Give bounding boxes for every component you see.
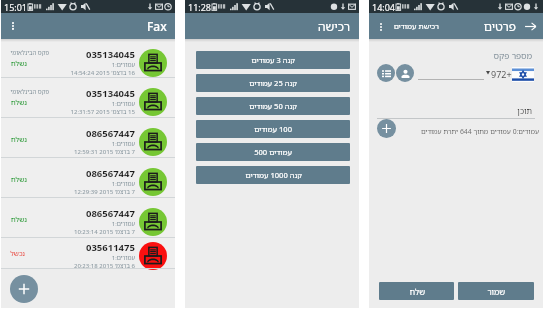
staticText: 086567447 (86, 167, 135, 180)
staticText: נכשל (10, 249, 25, 259)
staticText: 7 בדצמ' 2015 10:23:14 (73, 228, 135, 236)
button[interactable] (418, 66, 484, 80)
staticText: רכישת עמודים (393, 21, 439, 31)
staticText: עמודים:1 (111, 100, 135, 108)
staticText: פקס הבינלאומי (10, 88, 49, 96)
staticText: נשלח (10, 215, 27, 225)
button[interactable]: נכשל (1, 238, 175, 269)
button[interactable]: קנה 3 עמודים (196, 51, 350, 69)
staticText: 15:01 (4, 1, 28, 13)
staticText: נשלח (10, 135, 27, 145)
button[interactable]: קנה 25 עמודים (196, 74, 350, 92)
staticText: 035611475 (86, 241, 135, 254)
button[interactable]: Contacts (396, 64, 414, 82)
staticText: 16 בדצמ' 2015 14:54:24 (70, 69, 135, 77)
staticText: קנה 50 עמודים (249, 101, 297, 111)
staticText: תוכן (517, 105, 532, 116)
button[interactable]: נשלח (1, 198, 175, 238)
staticText: עמודים:0 עמודים מתוך 644 יתרת עמודים (420, 127, 539, 136)
button[interactable]: נשלח (1, 118, 175, 158)
button[interactable]: עמודים 500 (196, 143, 350, 161)
staticText: 6 בדצמ' 2015 20:23:18 (73, 262, 135, 270)
button[interactable]: New fax (10, 275, 38, 303)
button[interactable]: שמור (458, 282, 534, 300)
staticText: נשלח (10, 175, 27, 185)
staticText: 7 בדצמ' 2015 12:29:39 (73, 188, 135, 196)
button[interactable]: 100 עמודים (196, 120, 350, 138)
staticText: פרטים (483, 18, 516, 34)
staticText: קנה 1000 עמודים (245, 170, 302, 180)
staticText: פקס הבינלאומי (10, 49, 49, 57)
staticText: 035134045 (86, 87, 135, 100)
staticText: עמודים:1 (111, 180, 135, 188)
staticText: 086567447 (86, 127, 135, 140)
staticText: 14:04 (372, 1, 396, 13)
staticText: 15 בדצמ' 2015 12:31:57 (70, 108, 135, 116)
staticText: 035134045 (86, 48, 135, 61)
staticText: 100 עמודים (254, 124, 292, 134)
button[interactable]: Add content (377, 119, 396, 138)
button[interactable]: פקס הבינלאומי (1, 39, 175, 78)
button[interactable]: Back (523, 19, 537, 33)
staticText: Fax (147, 18, 167, 34)
button[interactable]: שלח (379, 282, 454, 300)
staticText: עמודים:1 (111, 140, 135, 148)
staticText: שמור (487, 286, 505, 297)
staticText: נשלח (10, 98, 27, 108)
button[interactable]: נשלח (1, 158, 175, 198)
staticText: עמודים:1 (111, 220, 135, 228)
button[interactable]: More options (6, 19, 20, 33)
button[interactable]: More options (374, 20, 387, 33)
button[interactable]: קנה 50 עמודים (196, 97, 350, 115)
staticText: קנה 25 עמודים (249, 78, 297, 88)
button[interactable]: קנה 1000 עמודים (196, 166, 350, 184)
button[interactable]: פקס הבינלאומי (1, 78, 175, 118)
button[interactable]: Country code (512, 67, 534, 82)
staticText: 11:28 (188, 1, 212, 13)
staticText: 086567447 (86, 207, 135, 220)
staticText: מספר פקס (493, 50, 532, 62)
staticText: רכישה (318, 18, 351, 34)
staticText: קנה 3 עמודים (251, 55, 295, 65)
staticText: 972+ (491, 68, 512, 80)
staticText: 7 בדצמ' 2015 12:59:31 (73, 148, 135, 156)
staticText: שלח (409, 286, 425, 297)
staticText: עמודים:1 (111, 61, 135, 69)
staticText: עמודים 500 (254, 147, 292, 157)
button[interactable]: Recent numbers (377, 64, 395, 82)
staticText: עמודים:1 (111, 254, 135, 262)
staticText: נשלח (10, 59, 27, 69)
